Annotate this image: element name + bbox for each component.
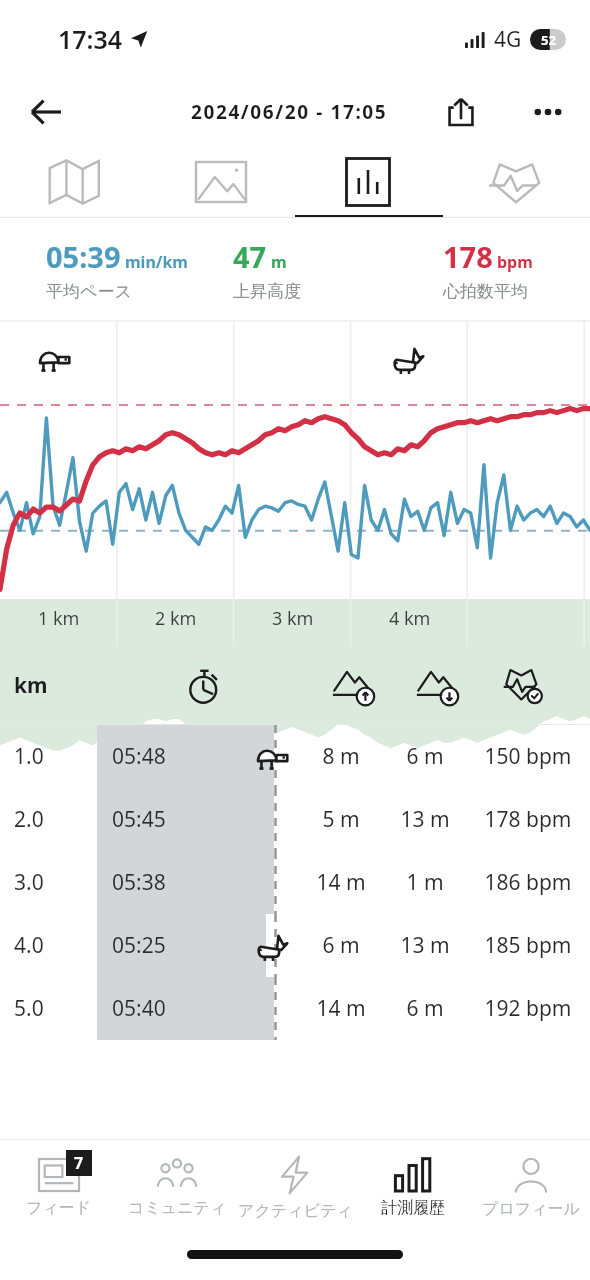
staticText: 05:48 — [112, 742, 166, 771]
staticText: 47 — [233, 237, 267, 276]
staticText: bpm — [497, 251, 533, 273]
staticText: 4.0 — [14, 931, 44, 960]
staticText: 05:39 — [46, 237, 121, 276]
staticText: m — [271, 251, 287, 273]
staticText: min/km — [125, 251, 188, 273]
staticText: コミュニティ — [128, 1198, 227, 1218]
staticText: 186 bpm — [476, 868, 580, 897]
staticText: 4G — [494, 25, 522, 54]
staticText: 5.0 — [14, 994, 44, 1023]
staticText: 17:34 — [58, 22, 123, 56]
staticText: 05:45 — [112, 805, 166, 834]
button[interactable]: Share — [436, 87, 486, 137]
button[interactable]: 2.0 — [0, 788, 590, 851]
staticText: 6 m — [394, 742, 456, 771]
staticText: 2 km — [155, 606, 197, 631]
staticText: アクティビティ — [238, 1201, 353, 1221]
staticText: 2024/06/20 - 17:05 — [191, 99, 388, 125]
staticText: 1 km — [38, 606, 80, 631]
button[interactable]: 3.0 — [0, 851, 590, 914]
staticText: 178 — [443, 237, 493, 276]
button[interactable]: 5.0 — [0, 977, 590, 1040]
button[interactable]: アクティビティ — [236, 1140, 354, 1236]
staticText: 05:40 — [112, 994, 166, 1023]
staticText: 平均ペース — [46, 281, 132, 302]
staticText: 150 bpm — [476, 742, 580, 771]
staticText: 192 bpm — [476, 994, 580, 1023]
staticText: 178 bpm — [476, 805, 580, 834]
button[interactable]: Charts — [294, 146, 442, 218]
staticText: 13 m — [394, 931, 456, 960]
staticText: 14 m — [310, 994, 372, 1023]
staticText: 3.0 — [14, 868, 44, 897]
staticText: 2.0 — [14, 805, 44, 834]
button[interactable]: Photos — [147, 146, 294, 218]
staticText: 05:38 — [112, 868, 166, 897]
staticText: 185 bpm — [476, 931, 580, 960]
button[interactable]: 計測履歴 — [354, 1140, 472, 1236]
staticText: km — [14, 671, 48, 700]
button[interactable]: 4.0 — [0, 914, 590, 977]
staticText: 5 m — [310, 805, 372, 834]
staticText: 3 km — [272, 606, 314, 631]
staticText: 計測履歴 — [381, 1198, 445, 1218]
staticText: 05:25 — [112, 931, 166, 960]
staticText: 6 m — [310, 931, 372, 960]
staticText: 6 m — [394, 994, 456, 1023]
button[interactable]: コミュニティ — [118, 1140, 236, 1236]
staticText: 1.0 — [14, 742, 44, 771]
staticText: 14 m — [310, 868, 372, 897]
staticText: 上昇高度 — [233, 281, 301, 302]
staticText: 心拍数平均 — [443, 281, 528, 302]
staticText: プロフィール — [482, 1199, 580, 1219]
button[interactable]: Heart rate — [442, 146, 590, 218]
staticText: 4 km — [389, 606, 431, 631]
staticText: 1 m — [394, 868, 456, 897]
staticText: 7 — [74, 1152, 84, 1174]
staticText: フィード — [26, 1198, 92, 1218]
staticText: 13 m — [394, 805, 456, 834]
button[interactable]: 7 — [0, 1140, 118, 1236]
button[interactable]: プロフィール — [472, 1140, 590, 1236]
staticText: 8 m — [310, 742, 372, 771]
button[interactable]: Map — [0, 146, 147, 218]
button[interactable]: 1.0 — [0, 725, 590, 788]
button[interactable]: Back — [20, 86, 72, 138]
staticText: 52 — [541, 31, 556, 49]
button[interactable]: More options — [520, 84, 576, 140]
